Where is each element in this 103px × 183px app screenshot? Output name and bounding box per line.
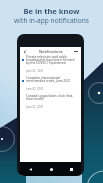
staticText: Notifications [39, 49, 63, 54]
button[interactable]: Recents [61, 162, 81, 176]
button[interactable]: Home [41, 162, 61, 176]
staticText: with in-app notifications [14, 16, 89, 25]
staticText: Canadian international merchandise trade… [26, 76, 77, 83]
button[interactable]: Canadian international merchandise trade… [20, 77, 81, 92]
button[interactable]: More options [71, 47, 81, 56]
staticText: Private television and cable broadcaster… [26, 55, 77, 65]
button[interactable]: Canada's population clock (real-time mod… [20, 95, 81, 110]
button[interactable]: Back [20, 47, 30, 56]
staticText: Canada's population clock (real-time mod… [26, 94, 77, 101]
staticText: June 02, 2021 [26, 69, 44, 73]
staticText: June 02, 2021 [26, 87, 44, 91]
staticText: Be in the know [23, 6, 80, 16]
button[interactable]: Private television and cable broadcaster… [20, 56, 81, 74]
staticText: June 02, 2021 [26, 105, 44, 109]
button[interactable]: Back [20, 162, 41, 176]
